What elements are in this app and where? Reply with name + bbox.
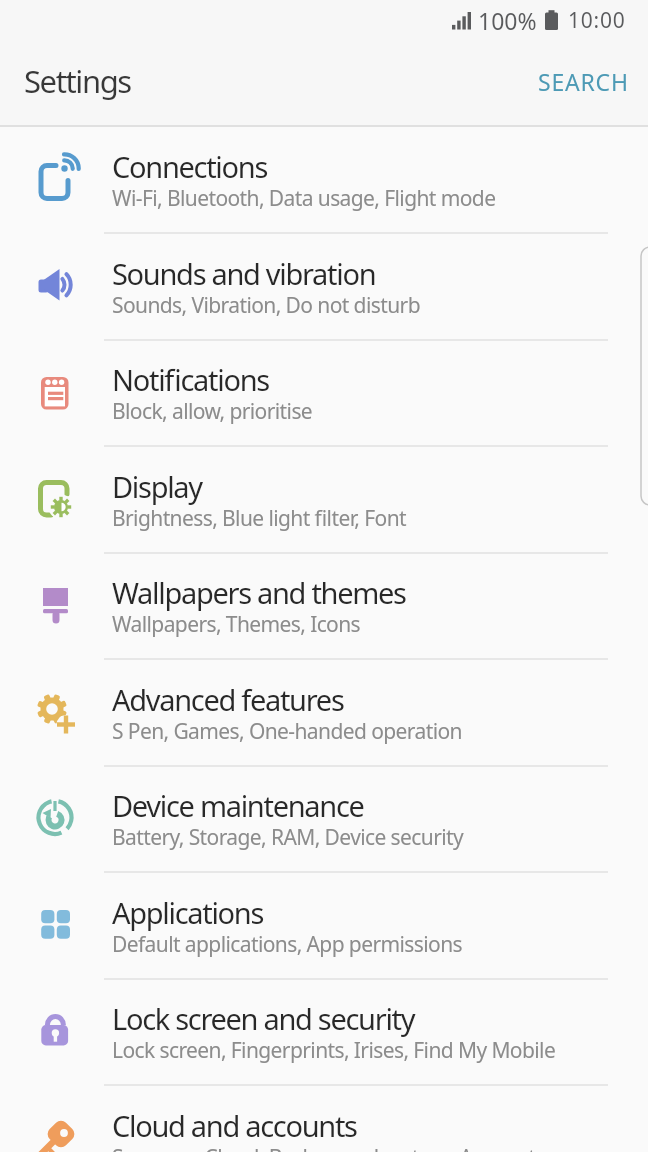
staticText: Cloud and accounts — [112, 1106, 357, 1145]
staticText: Battery, Storage, RAM, Device security — [112, 823, 464, 852]
staticText: Display — [112, 467, 202, 506]
staticText: SEARCH — [538, 66, 629, 97]
staticText: Device maintenance — [112, 786, 364, 825]
staticText: Lock screen and security — [112, 999, 415, 1038]
staticText: Notifications — [112, 360, 269, 399]
staticText: Settings — [24, 60, 131, 102]
button[interactable]: Connections — [0, 127, 648, 234]
staticText: Wallpapers, Themes, Icons — [112, 610, 361, 639]
staticText: 10:00 — [568, 6, 626, 35]
staticText: Block, allow, prioritise — [112, 397, 313, 426]
staticText: Default applications, App permissions — [112, 930, 463, 959]
button[interactable]: Wallpapers and themes — [0, 553, 648, 660]
staticText: Samsung Cloud, Backup and restore, Accou… — [112, 1143, 545, 1152]
staticText: 100% — [478, 5, 537, 36]
staticText: Applications — [112, 893, 264, 932]
button[interactable]: Notifications — [0, 340, 648, 447]
button[interactable]: Applications — [0, 873, 648, 980]
button[interactable]: SEARCH — [538, 67, 629, 98]
button[interactable]: Sounds and vibration — [0, 234, 648, 341]
button[interactable]: Lock screen and security — [0, 979, 648, 1086]
button[interactable]: Cloud and accounts — [0, 1086, 648, 1152]
staticText: Connections — [112, 147, 268, 186]
staticText: Wi-Fi, Bluetooth, Data usage, Flight mod… — [112, 184, 496, 213]
staticText: Wallpapers and themes — [112, 573, 406, 612]
staticText: Brightness, Blue light filter, Font — [112, 504, 407, 533]
staticText: Sounds and vibration — [112, 254, 376, 293]
button[interactable]: Display — [0, 447, 648, 554]
staticText: Sounds, Vibration, Do not disturb — [112, 291, 420, 320]
staticText: Advanced features — [112, 680, 344, 719]
staticText: Lock screen, Fingerprints, Irises, Find … — [112, 1036, 556, 1065]
button[interactable]: Advanced features — [0, 660, 648, 767]
button[interactable]: Device maintenance — [0, 766, 648, 873]
staticText: S Pen, Games, One-handed operation — [112, 717, 462, 746]
